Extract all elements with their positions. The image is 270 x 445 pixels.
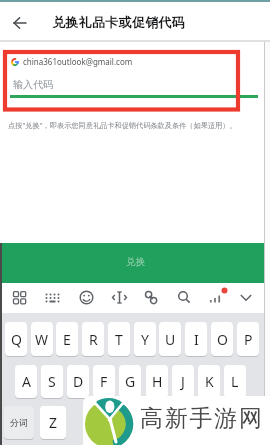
staticText: 兑换礼品卡或促销代码 <box>52 14 185 30</box>
button[interactable]: T <box>108 322 130 356</box>
staticText: 输入代码 <box>13 78 53 91</box>
button[interactable] <box>10 74 258 98</box>
staticText: R <box>89 330 98 349</box>
staticText: W <box>35 330 49 349</box>
staticText: U <box>165 330 176 349</box>
staticText: G <box>125 372 136 391</box>
button[interactable]: 分词 <box>4 406 34 439</box>
button[interactable] <box>13 17 27 29</box>
button[interactable]: U <box>159 322 181 356</box>
staticText: D <box>73 372 84 391</box>
button[interactable]: L <box>224 365 246 398</box>
button[interactable] <box>12 288 32 308</box>
button[interactable] <box>0 243 265 283</box>
staticText: Q <box>11 330 22 349</box>
staticText: 高新手游网 <box>139 404 263 433</box>
staticText: E <box>63 330 71 349</box>
staticText: 兑换 <box>126 256 145 268</box>
staticText: Y <box>141 330 149 349</box>
staticText: O <box>217 330 228 349</box>
staticText: A <box>22 372 31 391</box>
staticText: K <box>205 372 214 391</box>
staticText: L <box>231 372 239 391</box>
button[interactable]: J <box>172 365 194 398</box>
button[interactable]: D <box>67 365 89 398</box>
staticText: F <box>100 372 108 391</box>
button[interactable]: K <box>198 365 220 398</box>
button[interactable]: Q <box>5 322 27 356</box>
button[interactable]: Y <box>134 322 156 356</box>
button[interactable] <box>44 288 64 308</box>
button[interactable]: F <box>93 365 115 398</box>
button[interactable]: Z <box>40 406 66 439</box>
staticText: S <box>48 372 56 391</box>
button[interactable] <box>111 288 131 308</box>
button[interactable] <box>8 53 238 71</box>
button[interactable] <box>238 288 258 308</box>
button[interactable] <box>143 288 163 308</box>
button[interactable]: G <box>119 365 141 398</box>
staticText: I <box>194 330 199 349</box>
staticText: Z <box>49 413 58 432</box>
button[interactable]: E <box>56 322 78 356</box>
button[interactable] <box>207 288 227 308</box>
button[interactable] <box>176 288 196 308</box>
button[interactable]: R <box>82 322 104 356</box>
button[interactable]: H <box>146 365 168 398</box>
button[interactable] <box>79 288 99 308</box>
staticText: T <box>115 330 123 349</box>
staticText: 分词 <box>10 417 28 428</box>
button[interactable]: W <box>31 322 53 356</box>
staticText: H <box>152 372 163 391</box>
staticText: J <box>181 372 185 391</box>
staticText: P <box>244 330 253 349</box>
staticText: china361outlook@gmail.com <box>23 56 133 67</box>
button[interactable]: A <box>15 365 37 398</box>
button[interactable]: P <box>237 322 259 356</box>
button[interactable]: I <box>185 322 207 356</box>
button[interactable]: O <box>211 322 233 356</box>
staticText: 点按"兑换"，即表示您同意礼品卡和促销代码条款及条件（如果适用）。 <box>8 120 237 130</box>
button[interactable]: S <box>41 365 63 398</box>
